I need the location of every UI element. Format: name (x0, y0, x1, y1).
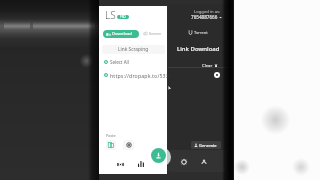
staticText: PRO (120, 15, 126, 19)
button[interactable]: https://dropapk.to/5334i40-66j (104, 71, 170, 79)
staticText: Download (112, 31, 132, 37)
button[interactable]: Clear (202, 63, 218, 69)
button[interactable]: Paste (106, 140, 116, 150)
staticText: Generate (199, 143, 217, 148)
staticText: Torrent (194, 30, 208, 35)
staticText: Select All (110, 59, 129, 65)
button[interactable]: Download (151, 148, 166, 163)
staticText: Paste (106, 133, 116, 138)
staticText: Link Scraping (118, 46, 149, 53)
button[interactable]: Torrent (188, 29, 208, 36)
button[interactable]: 7654887666 (191, 14, 222, 20)
button[interactable]: Select All (104, 58, 164, 66)
staticText: LS (105, 8, 116, 22)
button[interactable]: Generate (191, 141, 221, 149)
button[interactable]: Broadcast (114, 158, 126, 170)
staticText: 7654887666 (191, 14, 218, 20)
button[interactable]: PRO (117, 15, 129, 19)
button[interactable]: Account (199, 157, 209, 167)
staticText: Server (149, 31, 162, 36)
staticText: Clear (202, 63, 213, 69)
button[interactable]: Select (214, 72, 220, 78)
button[interactable]: Stats (135, 158, 147, 170)
staticText: https://dropapk.to/5334i40-66j (110, 72, 170, 79)
button[interactable]: Add (123, 140, 134, 150)
button[interactable]: Settings (179, 157, 189, 167)
staticText: Link Download (177, 45, 220, 53)
button[interactable]: Download (103, 30, 139, 38)
button[interactable]: Link Scraping (102, 45, 165, 54)
staticText: Logged in as: (194, 9, 221, 15)
button[interactable]: Server (143, 30, 167, 37)
